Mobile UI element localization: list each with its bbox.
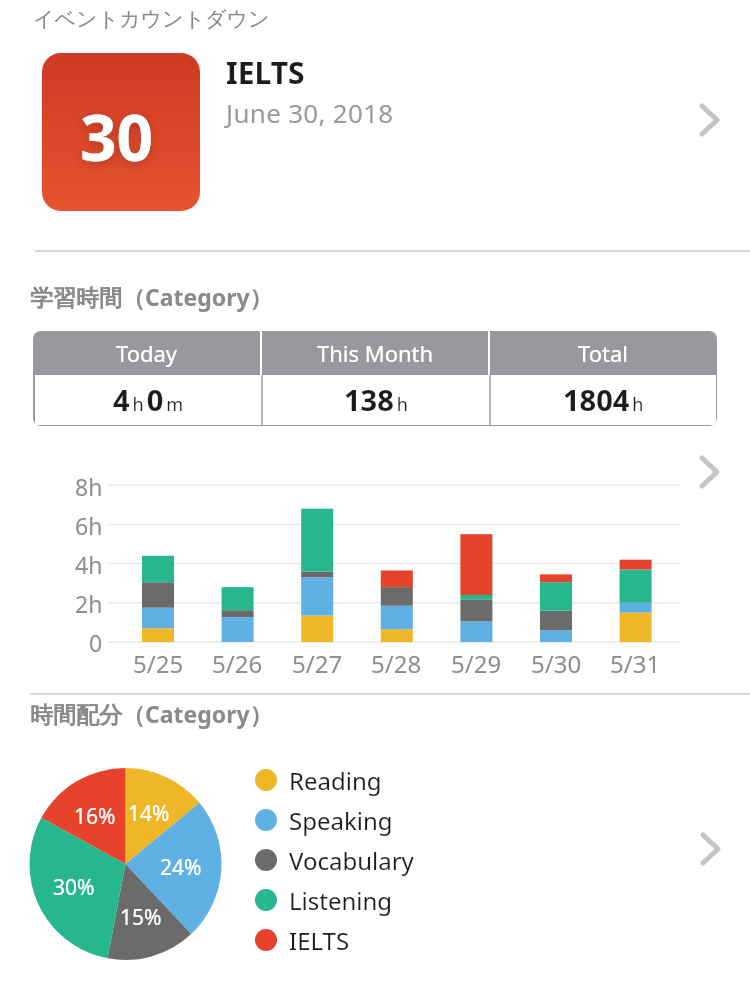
staticText: 0 [89,627,103,658]
staticText: IELTS [289,924,350,957]
staticText: Vocabulary [289,844,414,877]
staticText: Total [578,338,628,368]
staticText: 30 [80,93,154,180]
staticText: 6h [75,510,103,541]
button[interactable]: 14% [0,730,750,985]
staticText: 30% [53,873,95,902]
staticText: 5/30 [531,647,582,679]
staticText: 時間配分（Category） [30,698,273,729]
staticText: 24% [160,853,202,882]
staticText: 5/29 [451,647,502,679]
staticText: Reading [289,764,382,797]
staticText: 8h [75,471,103,502]
staticText: 学習時間（Category） [30,281,273,312]
staticText: 14% [128,799,170,828]
staticText: June 30, 2018 [226,95,394,130]
staticText: Today [116,338,178,368]
staticText: Listening [289,884,393,917]
staticText: 1804 h [563,380,644,419]
staticText: IELTS [226,52,305,93]
staticText: 5/26 [212,647,263,679]
staticText: 15% [120,903,162,932]
button[interactable]: 30 [0,45,750,225]
staticText: イベントカウントダウン [33,6,270,32]
staticText: 4 h 0 m [113,380,184,419]
staticText: 5/27 [292,647,343,679]
staticText: 4h [75,549,103,580]
staticText: 5/25 [133,647,184,679]
staticText: 138 h [344,380,408,419]
staticText: 5/31 [610,647,661,679]
staticText: 5/28 [371,647,422,679]
button[interactable]: 0 [0,445,750,690]
staticText: 2h [75,588,103,619]
staticText: This Month [317,338,434,368]
staticText: Speaking [289,804,393,837]
staticText: 16% [74,802,116,831]
